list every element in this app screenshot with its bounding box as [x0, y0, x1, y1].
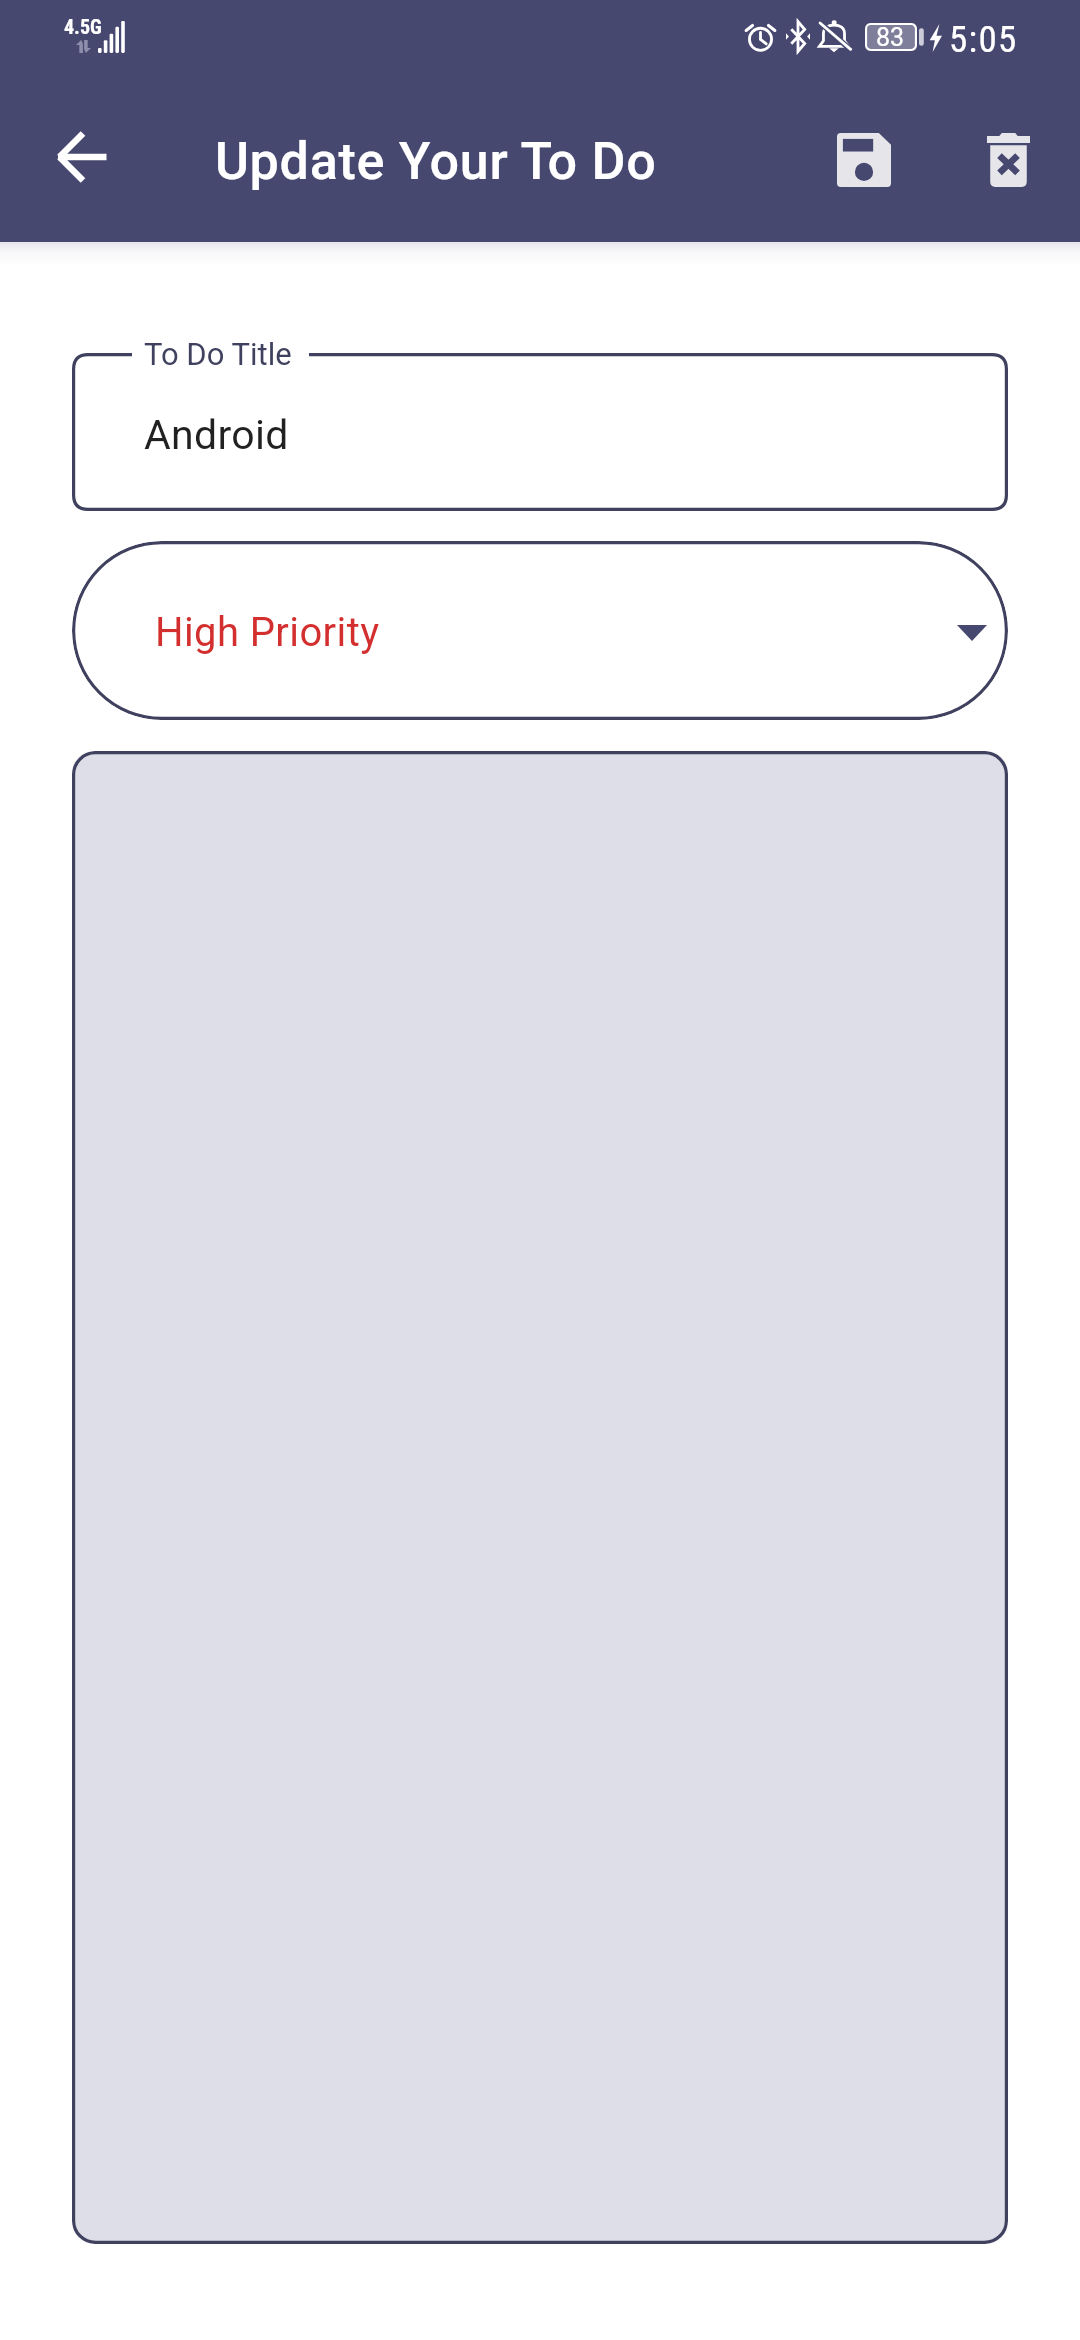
- staticText: Android: [144, 411, 289, 459]
- staticText: 4.5G: [64, 15, 102, 38]
- button[interactable]: High Priority: [72, 541, 1008, 720]
- staticText: To Do Title: [144, 336, 292, 372]
- button[interactable]: Save: [816, 112, 912, 208]
- staticText: High Priority: [155, 609, 380, 656]
- button[interactable]: [72, 751, 1008, 2244]
- button[interactable]: Back: [34, 109, 130, 205]
- staticText: 83: [876, 23, 905, 51]
- staticText: Update Your To Do: [215, 131, 657, 192]
- button[interactable]: To Do Title: [72, 353, 1008, 511]
- button[interactable]: Delete: [960, 112, 1056, 208]
- staticText: 5:05: [949, 18, 1018, 61]
